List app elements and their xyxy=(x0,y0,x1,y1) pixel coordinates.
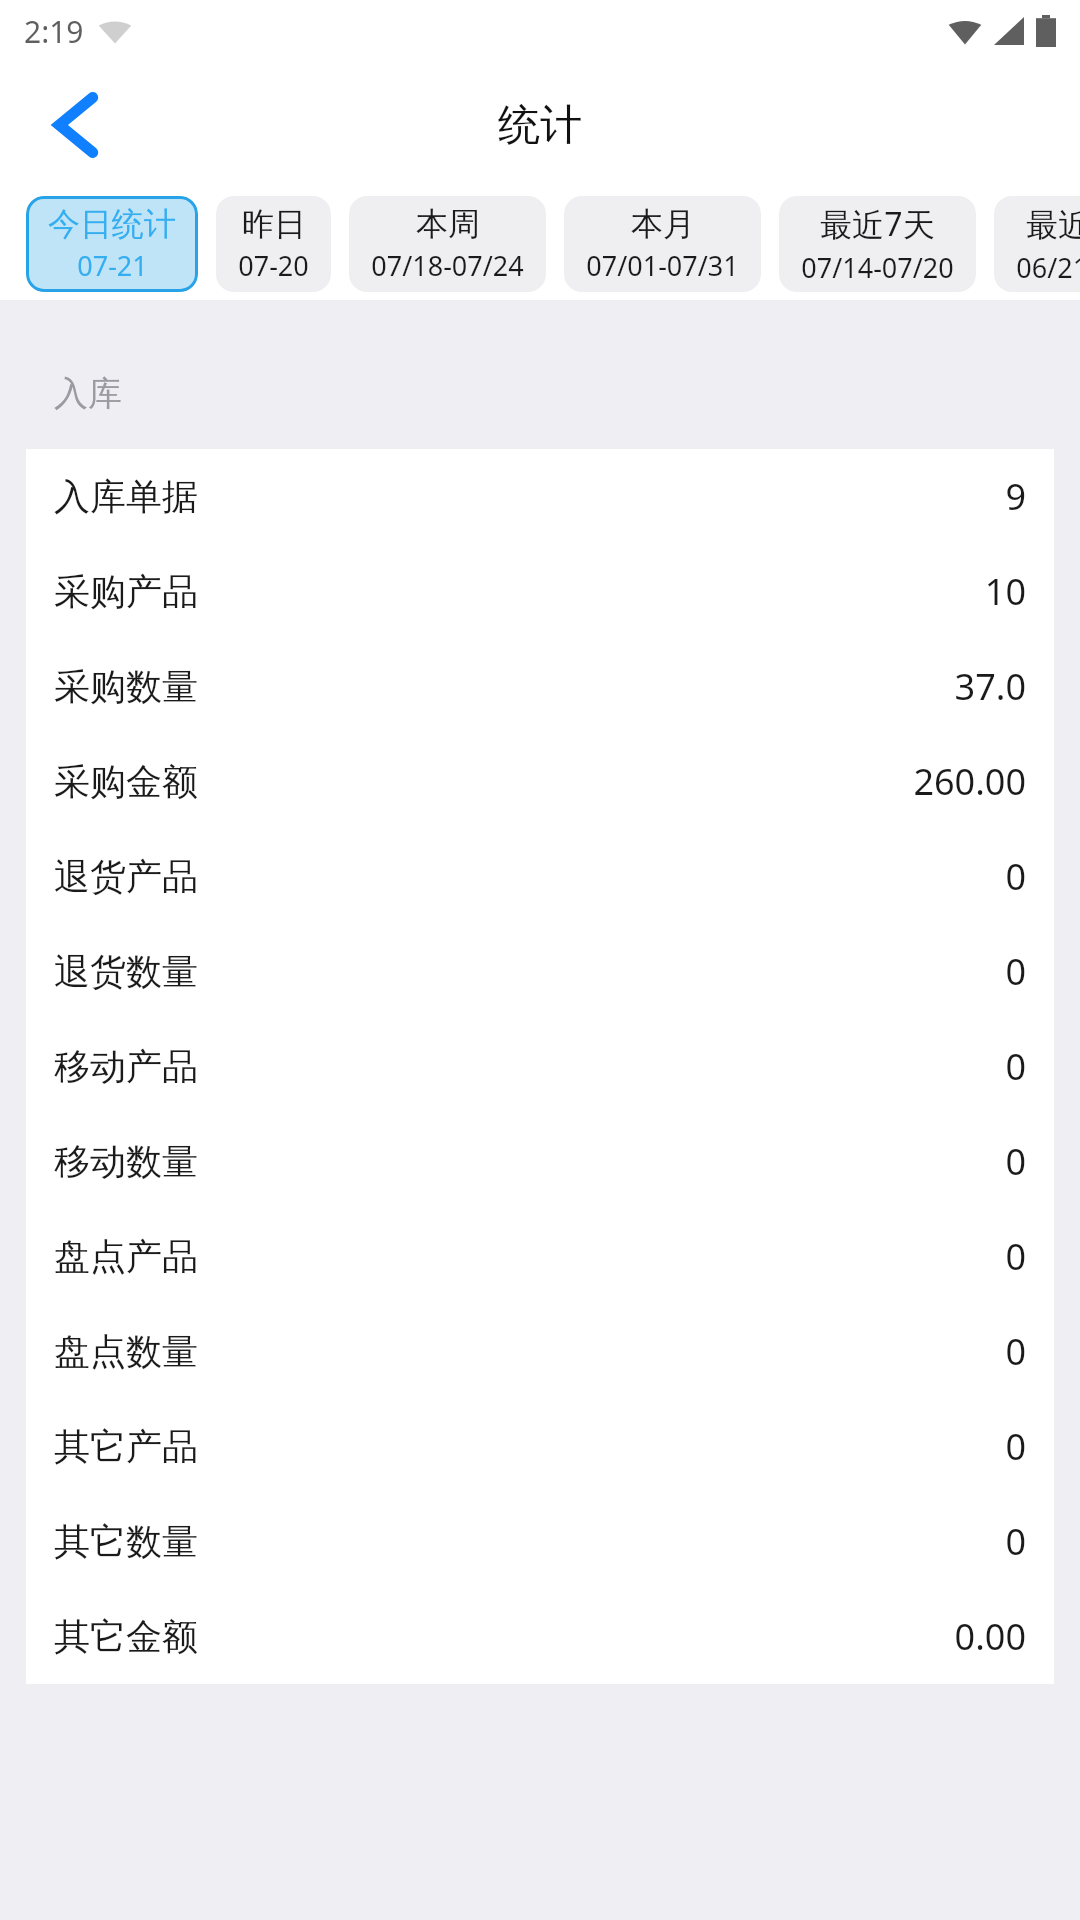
staticText: 07/14-07/20 xyxy=(801,249,954,286)
staticText: 0 xyxy=(1005,1137,1026,1186)
staticText: 0 xyxy=(1005,1422,1026,1471)
staticText: 本月 xyxy=(631,204,695,244)
staticText: 0 xyxy=(1005,947,1026,996)
staticText: 其它产品 xyxy=(54,1424,198,1469)
staticText: 10 xyxy=(984,567,1026,616)
staticText: 0.00 xyxy=(954,1612,1026,1661)
staticText: 260.00 xyxy=(913,757,1026,806)
button[interactable]: 盘点产品 xyxy=(26,1209,1054,1304)
staticText: 07-21 xyxy=(77,247,148,284)
staticText: 0 xyxy=(1005,1232,1026,1281)
button[interactable]: 其它产品 xyxy=(26,1399,1054,1494)
staticText: 其它数量 xyxy=(54,1519,198,1564)
button[interactable]: 入库单据 xyxy=(26,449,1054,544)
button[interactable]: 盘点数量 xyxy=(26,1304,1054,1399)
staticText: 本周 xyxy=(416,204,480,244)
staticText: 0 xyxy=(1005,1517,1026,1566)
staticText: 统计 xyxy=(498,99,582,152)
button[interactable]: 最近30天 xyxy=(994,196,1080,292)
staticText: 9 xyxy=(1005,472,1026,521)
button[interactable]: 今日统计 xyxy=(26,196,198,292)
button[interactable]: 移动数量 xyxy=(26,1114,1054,1209)
staticText: 07/01-07/31 xyxy=(586,247,739,284)
staticText: 最近7天 xyxy=(820,202,935,246)
staticText: 今日统计 xyxy=(48,204,176,244)
button[interactable]: 采购数量 xyxy=(26,639,1054,734)
staticText: 07-20 xyxy=(238,247,309,284)
staticText: 0 xyxy=(1005,1042,1026,1091)
staticText: 采购数量 xyxy=(54,664,198,709)
staticText: 37.0 xyxy=(954,662,1026,711)
button[interactable]: 退货产品 xyxy=(26,829,1054,924)
button[interactable]: 本周 xyxy=(349,196,546,292)
button[interactable]: 本月 xyxy=(564,196,761,292)
staticText: 0 xyxy=(1005,852,1026,901)
button[interactable]: 其它数量 xyxy=(26,1494,1054,1589)
button[interactable]: 采购产品 xyxy=(26,544,1054,639)
staticText: 昨日 xyxy=(242,204,306,244)
button[interactable]: 退货数量 xyxy=(26,924,1054,1019)
staticText: 0 xyxy=(1005,1327,1026,1376)
staticText: 退货产品 xyxy=(54,854,198,899)
staticText: 2:19 xyxy=(24,11,84,52)
staticText: 盘点数量 xyxy=(54,1329,198,1374)
staticText: 盘点产品 xyxy=(54,1234,198,1279)
staticText: 移动数量 xyxy=(54,1139,198,1184)
button[interactable]: 其它金额 xyxy=(26,1589,1054,1684)
staticText: 入库单据 xyxy=(54,474,198,519)
staticText: 07/18-07/24 xyxy=(371,247,524,284)
staticText: 退货数量 xyxy=(54,949,198,994)
staticText: 入库 xyxy=(54,372,122,415)
staticText: 采购产品 xyxy=(54,569,198,614)
button[interactable]: Back xyxy=(24,73,128,177)
staticText: 移动产品 xyxy=(54,1044,198,1089)
button[interactable]: 移动产品 xyxy=(26,1019,1054,1114)
button[interactable]: 昨日 xyxy=(216,196,331,292)
staticText: 最近30天 xyxy=(1026,202,1080,246)
staticText: 采购金额 xyxy=(54,759,198,804)
button[interactable]: 采购金额 xyxy=(26,734,1054,829)
staticText: 其它金额 xyxy=(54,1614,198,1659)
button[interactable]: 最近7天 xyxy=(779,196,976,292)
staticText: 06/21-07/20 xyxy=(1016,249,1080,286)
